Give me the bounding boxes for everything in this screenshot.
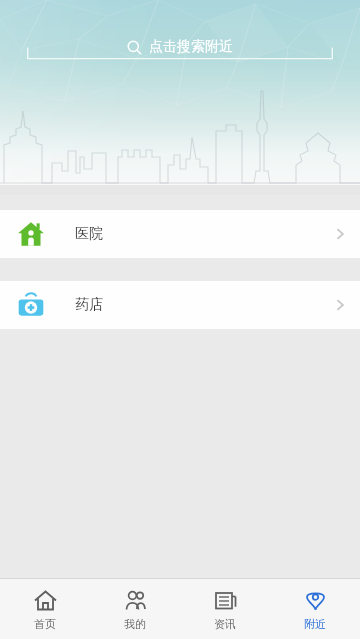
staticText: 医院	[75, 225, 103, 243]
staticText: 点击搜索附近	[149, 38, 233, 56]
staticText: 首页	[34, 617, 56, 631]
button[interactable]: 首页	[0, 579, 90, 639]
button[interactable]: 药店	[0, 281, 360, 329]
button[interactable]: 医院	[0, 210, 360, 258]
staticText: 附近	[304, 617, 326, 631]
button[interactable]: 我的	[90, 579, 180, 639]
staticText: 资讯	[214, 617, 236, 631]
button[interactable]: 点击搜索附近	[0, 30, 360, 64]
button[interactable]: 附近	[270, 579, 360, 639]
staticText: 我的	[124, 617, 146, 631]
staticText: 药店	[75, 296, 103, 314]
button[interactable]: 资讯	[180, 579, 270, 639]
